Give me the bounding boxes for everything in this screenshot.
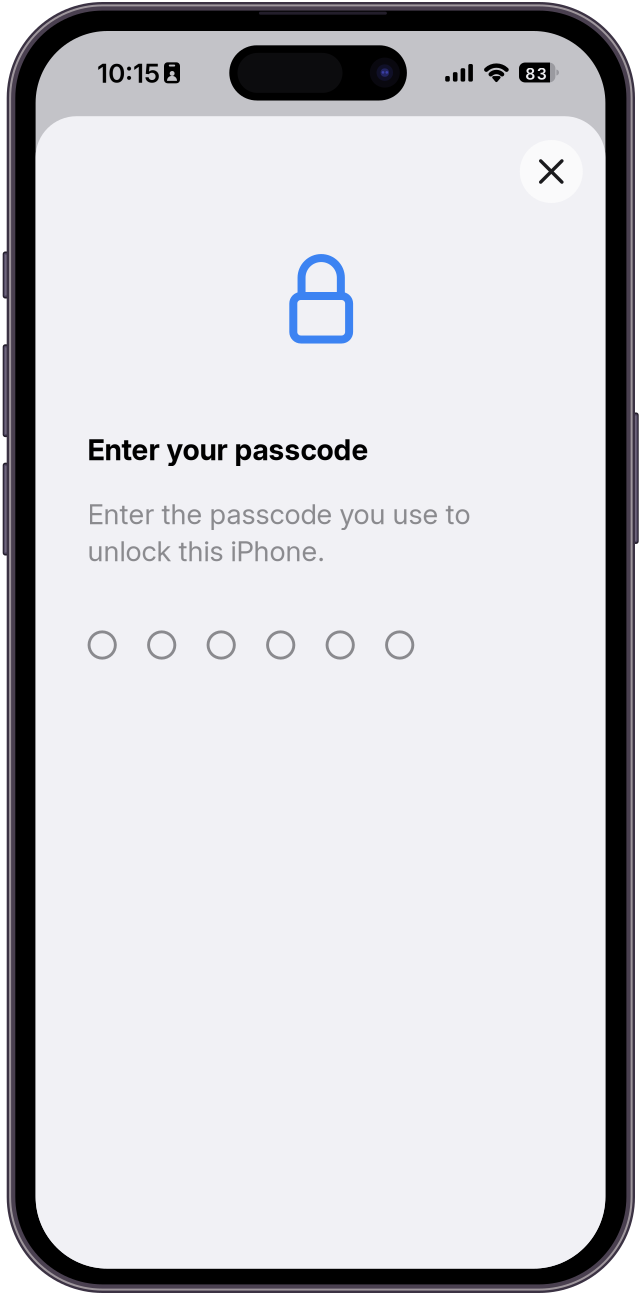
button[interactable]: Close (520, 140, 583, 203)
staticText: 83 (525, 64, 547, 83)
staticText: Enter your passcode (88, 432, 369, 467)
staticText: 10:15 (97, 58, 160, 89)
staticText: Enter the passcode you use to unlock thi… (88, 497, 471, 568)
